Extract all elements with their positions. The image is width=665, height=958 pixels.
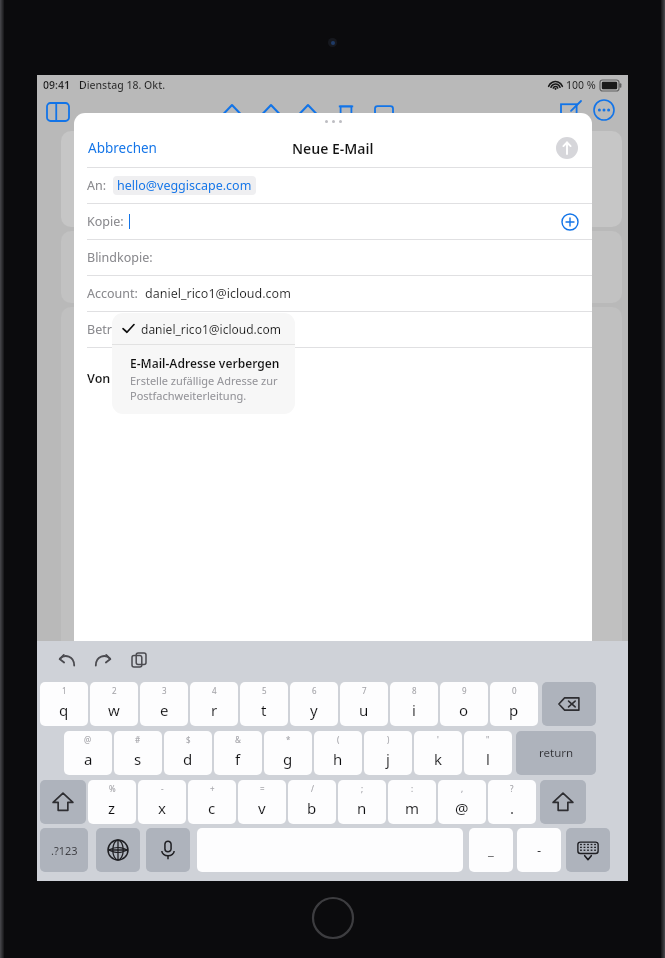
button[interactable]: 3 (140, 682, 188, 726)
button[interactable]: 8 (390, 682, 438, 726)
staticText: ? (510, 783, 514, 794)
staticText: ) (387, 734, 390, 745)
staticText: daniel_rico1@icloud.com (145, 285, 291, 302)
button[interactable]: Senden (556, 137, 578, 159)
button[interactable]: Diktieren (146, 828, 190, 872)
staticText: q (59, 700, 69, 720)
staticText: d (183, 749, 193, 769)
button[interactable]: % (88, 780, 136, 824)
staticText: w (108, 700, 120, 720)
staticText: t (261, 700, 267, 720)
staticText: # (135, 734, 141, 745)
staticText: + (210, 783, 215, 794)
staticText: e (160, 700, 169, 720)
button[interactable]: Widerrufen (55, 648, 79, 672)
button[interactable]: Home (311, 896, 355, 940)
button[interactable]: Sprache wechseln (96, 828, 140, 872)
button[interactable]: 5 (240, 682, 288, 726)
staticText: Betreff: (87, 321, 131, 338)
button[interactable]: 9 (440, 682, 488, 726)
button[interactable]: " (464, 731, 512, 775)
staticText: 2 (112, 685, 117, 696)
button[interactable]: daniel_rico1@icloud.com (112, 313, 295, 344)
button[interactable]: ? (488, 780, 536, 824)
staticText: m (405, 798, 420, 818)
staticText: a (84, 749, 93, 769)
button[interactable]: / (288, 780, 336, 824)
button[interactable]: Sidebar (47, 103, 69, 121)
button[interactable]: * (264, 731, 312, 775)
staticText: b (307, 798, 317, 818)
staticText: Blindkopie: (87, 249, 153, 266)
staticText: o (459, 700, 469, 720)
staticText: 09:41 (43, 78, 70, 92)
staticText: Account: (87, 285, 138, 302)
button[interactable]: 1 (40, 682, 88, 726)
button[interactable]: 6 (290, 682, 338, 726)
staticText: s (134, 749, 142, 769)
staticText: 7 (362, 685, 367, 696)
staticText: % (109, 783, 116, 794)
button[interactable]: E-Mail-Adresse verbergen (112, 345, 295, 414)
staticText: daniel_rico1@icloud.com (141, 321, 282, 337)
button[interactable]: Umschalt (540, 780, 586, 824)
staticText: c (208, 798, 216, 818)
button[interactable]: # (114, 731, 162, 775)
button[interactable]: Tastatur ausblenden (566, 828, 610, 872)
button[interactable]: return (516, 731, 596, 775)
staticText: v (258, 798, 266, 818)
button[interactable]: $ (164, 731, 212, 775)
staticText: return (539, 745, 574, 761)
button[interactable]: ' (414, 731, 462, 775)
button[interactable]: ) (364, 731, 412, 775)
button[interactable]: 2 (90, 682, 138, 726)
staticText: 4 (212, 685, 217, 696)
button[interactable]: Umschalt (40, 780, 86, 824)
staticText: l (486, 749, 490, 769)
button[interactable]: + (188, 780, 236, 824)
staticText: Kopie: (87, 213, 124, 230)
staticText: Von (87, 370, 111, 387)
staticText: An: (87, 177, 107, 194)
button[interactable]: - (138, 780, 186, 824)
button[interactable]: 0 (490, 682, 538, 726)
button[interactable]: : (388, 780, 436, 824)
button[interactable]: 7 (340, 682, 388, 726)
button[interactable]: Wiederholen (91, 648, 115, 672)
button[interactable]: ( (314, 731, 362, 775)
button[interactable]: ; (338, 780, 386, 824)
staticText: Abbrechen (88, 139, 157, 157)
button[interactable]: = (238, 780, 286, 824)
staticText: g (283, 749, 293, 769)
button[interactable]: , (438, 780, 486, 824)
staticText: * (286, 734, 291, 745)
staticText: 5 (262, 685, 267, 696)
staticText: y (310, 700, 318, 720)
button[interactable]: Einsetzen (127, 648, 151, 672)
button[interactable]: - (517, 828, 561, 872)
button[interactable]: _ (469, 828, 513, 872)
staticText: Neue E-Mail (292, 139, 374, 158)
staticText: 100 % (566, 78, 596, 92)
button[interactable]: Löschen (542, 682, 596, 726)
staticText: $ (186, 734, 191, 745)
button[interactable]: & (214, 731, 262, 775)
button[interactable]: @ (64, 731, 112, 775)
button[interactable]: Mehr (593, 99, 615, 121)
staticText: hello@veggiscape.com (117, 177, 252, 194)
staticText: f (235, 749, 241, 769)
staticText: " (486, 734, 490, 745)
staticText: = (260, 783, 265, 794)
staticText: : (411, 783, 414, 794)
button[interactable]: 4 (190, 682, 238, 726)
button[interactable]: .?123 (40, 828, 88, 872)
staticText: ; (361, 783, 364, 794)
staticText: j (386, 749, 390, 769)
staticText: Dienstag 18. Okt. (79, 78, 166, 92)
staticText: & (235, 734, 241, 745)
button[interactable]: Neue E-Mail (561, 101, 581, 119)
staticText: E-Mail-Adresse verbergen (130, 355, 280, 371)
button[interactable]: Abbrechen (82, 135, 163, 161)
button[interactable]: Kontakt hinzufügen (561, 213, 579, 231)
